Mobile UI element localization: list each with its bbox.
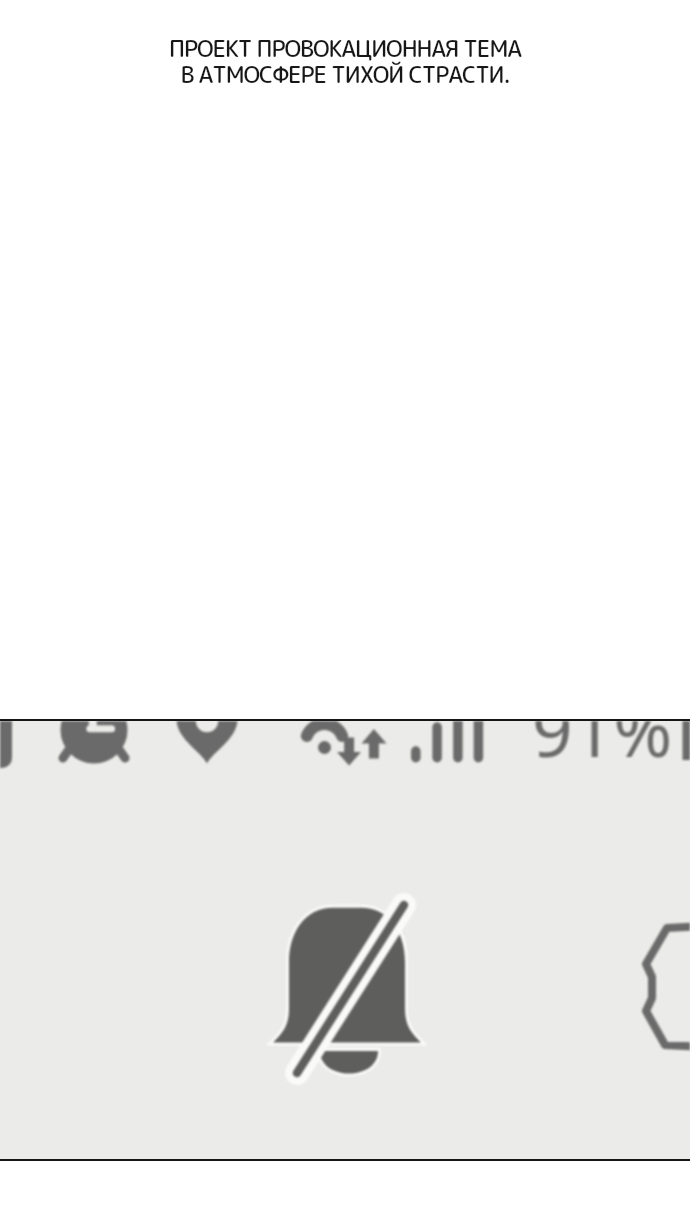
staticText: ПРОЕКТ ПРОВОКАЦИОННАЯ ТЕМА В АТМОСФЕРЕ Т… (0, 32, 690, 91)
staticText: 91% (532, 721, 673, 778)
button[interactable]: Notifications off (260, 890, 440, 1090)
other: Settings (620, 900, 690, 1130)
